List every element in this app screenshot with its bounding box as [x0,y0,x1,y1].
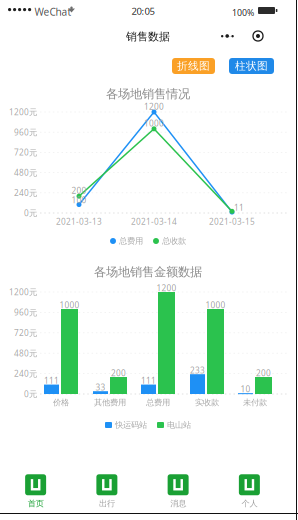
staticText: 1000 [59,299,79,311]
staticText: 柱状图 [235,59,268,73]
staticText: 折线图 [177,59,210,73]
staticText: 11 [234,202,244,213]
staticText: 200 [256,367,271,379]
button[interactable]: 消息 [142,470,214,513]
staticText: 总费用 [119,236,143,246]
staticText: 2021-03-13 [56,216,102,227]
staticText: 1200元 [9,106,37,118]
staticText: 1000 [205,299,225,311]
button[interactable]: Close [251,29,265,43]
staticText: 100% [232,6,254,18]
staticText: 0元 [24,388,37,400]
staticText: 各场地销售金额数据 [94,264,202,280]
staticText: 销售数据 [126,30,170,43]
staticText: 240元 [14,368,37,379]
staticText: 2021-03-14 [131,216,177,227]
staticText: 720元 [14,327,37,338]
staticText: 个人 [241,498,257,509]
staticText: 20:05 [131,4,154,18]
button[interactable]: 个人 [214,470,285,513]
staticText: 0元 [24,207,37,219]
staticText: 1200 [144,101,164,112]
button[interactable]: 首页 [0,470,71,513]
button[interactable]: 出行 [71,470,142,513]
staticText: 出行 [99,498,115,509]
staticText: 111 [141,375,156,386]
staticText: 1200元 [9,286,37,298]
staticText: 电山站 [167,420,191,430]
staticText: 实收款 [195,397,219,408]
staticText: 200 [111,367,126,379]
staticText: 240元 [14,187,37,198]
staticText: 960元 [14,127,37,138]
staticText: 960元 [14,307,37,318]
staticText: 2021-03-15 [209,216,255,227]
staticText: 消息 [170,498,186,509]
button[interactable]: More [221,30,235,43]
staticText: 100 [71,194,86,206]
button[interactable]: 柱状图 [229,58,274,74]
staticText: 快运码站 [115,420,147,430]
staticText: 价格 [53,397,69,408]
staticText: 总收款 [162,236,186,246]
staticText: 10 [240,383,250,395]
staticText: 480元 [14,348,37,359]
staticText: 33 [95,382,105,393]
button[interactable]: 折线图 [172,58,215,74]
staticText: WeChat [34,5,71,19]
staticText: 200 [71,185,86,196]
staticText: 720元 [14,147,37,158]
staticText: 480元 [14,167,37,178]
staticText: 各场地销售情况 [106,86,190,102]
staticText: 1000 [144,118,164,129]
staticText: 其他费用 [94,397,126,408]
staticText: 首页 [28,498,44,509]
staticText: 233 [190,365,205,376]
staticText: 111 [44,375,59,386]
staticText: 总费用 [146,397,170,408]
staticText: 1200 [156,282,176,294]
staticText: 未付款 [243,397,267,408]
